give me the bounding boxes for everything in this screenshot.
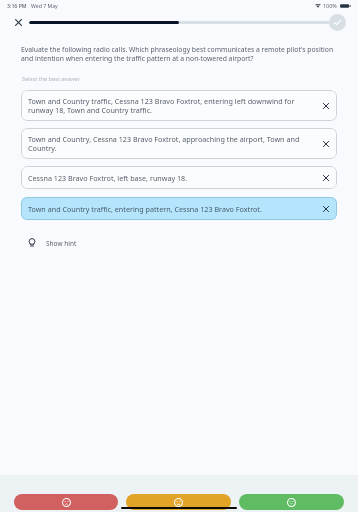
button[interactable]: Good [126,494,231,510]
button[interactable]: Close [9,13,28,32]
button[interactable]: Finish [329,14,346,31]
staticText: Town and Country traffic, Cessna 123 Bra… [28,96,306,115]
staticText: Show hint [46,239,77,248]
staticText: Evaluate the following radio calls. Whic… [21,45,337,63]
staticText: Wed 7 May [31,2,58,9]
button[interactable]: Town and Country traffic, Cessna 123 Bra… [21,90,337,121]
button[interactable]: Cessna 123 Bravo Foxtrot, left base, run… [21,166,337,189]
staticText: Cessna 123 Bravo Foxtrot, left base, run… [28,173,188,183]
staticText: 100% [323,2,337,9]
staticText: Town and Country, Cessna 123 Bravo Foxtr… [28,134,306,153]
staticText: Select the best answer [22,75,80,82]
button[interactable]: Town and Country, Cessna 123 Bravo Foxtr… [21,128,337,159]
staticText: Town and Country traffic, entering patte… [28,204,262,214]
button[interactable]: Easy [239,494,344,510]
button[interactable]: Show hint [24,235,80,251]
staticText: 3:16 PM [7,2,27,9]
button[interactable]: Town and Country traffic, entering patte… [21,197,337,220]
button[interactable]: Again [14,494,118,510]
